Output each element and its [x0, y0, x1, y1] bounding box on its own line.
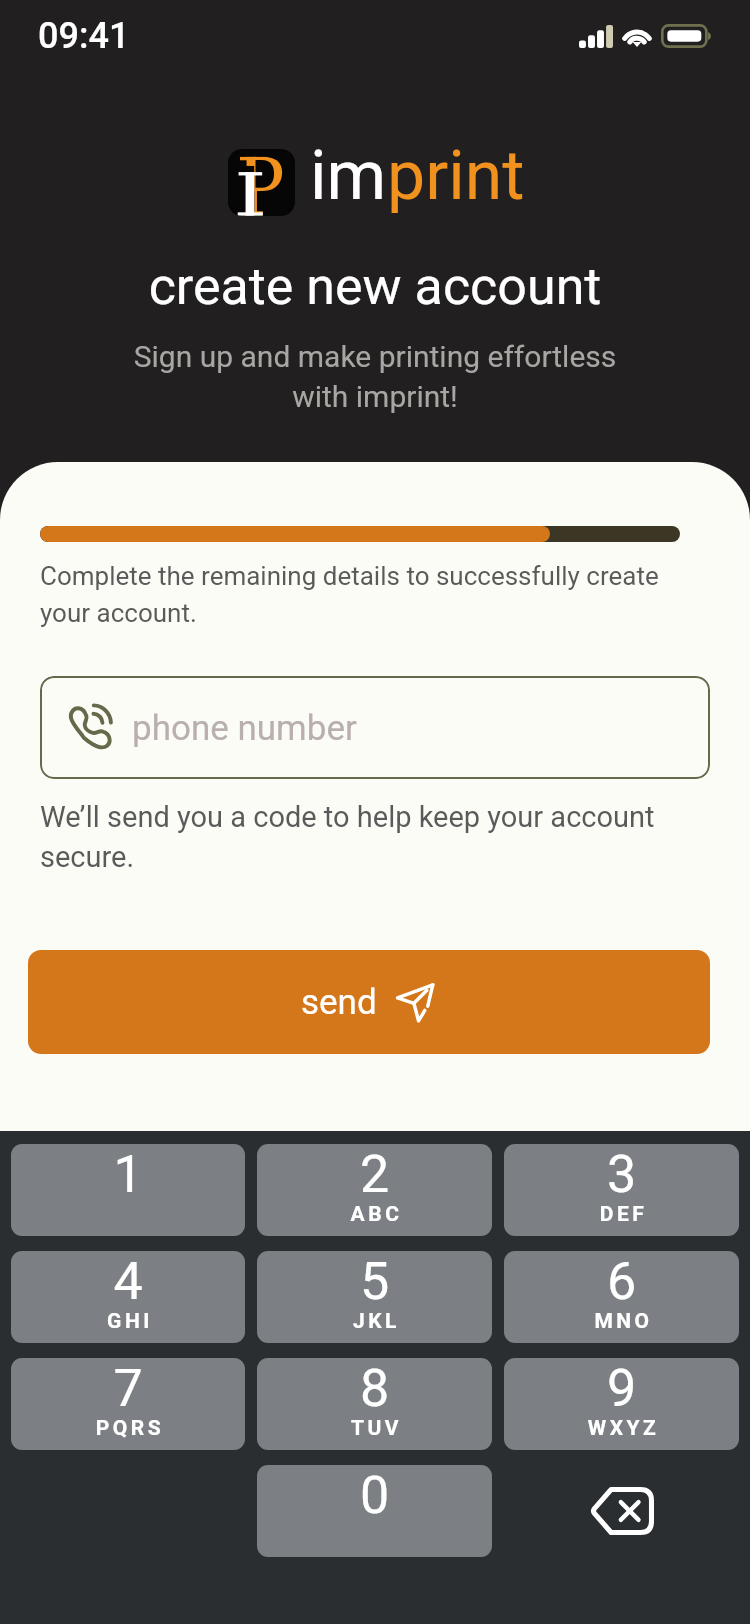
staticText: PQRS: [13, 1416, 245, 1441]
button[interactable]: 0: [257, 1465, 492, 1557]
staticText: JKL: [259, 1309, 492, 1334]
staticText: 0: [257, 1465, 492, 1526]
staticText: ABC: [259, 1202, 492, 1227]
button[interactable]: 5: [257, 1251, 492, 1343]
button[interactable]: 7: [11, 1358, 245, 1450]
staticText: send: [301, 982, 377, 1023]
staticText: 3: [504, 1144, 739, 1205]
staticText: 8: [257, 1358, 492, 1419]
button[interactable]: Backspace: [504, 1465, 739, 1557]
button[interactable]: 8: [257, 1358, 492, 1450]
staticText: 5: [257, 1251, 492, 1312]
staticText: GHI: [13, 1309, 245, 1334]
button[interactable]: 3: [504, 1144, 739, 1236]
staticText: 1: [11, 1144, 245, 1205]
button[interactable]: phone number: [40, 676, 710, 779]
staticText: 2: [257, 1144, 492, 1205]
staticText: DEF: [506, 1202, 739, 1227]
staticText: TUV: [259, 1416, 492, 1441]
staticText: 9: [504, 1358, 739, 1419]
staticText: im: [310, 136, 387, 216]
staticText: We’ll send you a code to help keep your …: [40, 800, 710, 875]
staticText: 09:41: [38, 15, 130, 57]
staticText: create new account: [0, 256, 750, 317]
button[interactable]: 2: [257, 1144, 492, 1236]
staticText: 4: [11, 1251, 245, 1312]
staticText: phone number: [132, 708, 357, 749]
staticText: WXYZ: [506, 1416, 739, 1441]
button[interactable]: 1: [11, 1144, 245, 1236]
button[interactable]: send: [28, 950, 710, 1054]
staticText: Sign up and make printing effortless wit…: [0, 339, 750, 414]
button[interactable]: 9: [504, 1358, 739, 1450]
staticText: MNO: [506, 1309, 739, 1334]
button[interactable]: 6: [504, 1251, 739, 1343]
staticText: print: [387, 136, 525, 216]
staticText: Complete the remaining details to succes…: [40, 561, 695, 629]
button[interactable]: 4: [11, 1251, 245, 1343]
staticText: 7: [11, 1358, 245, 1419]
staticText: 6: [504, 1251, 739, 1312]
